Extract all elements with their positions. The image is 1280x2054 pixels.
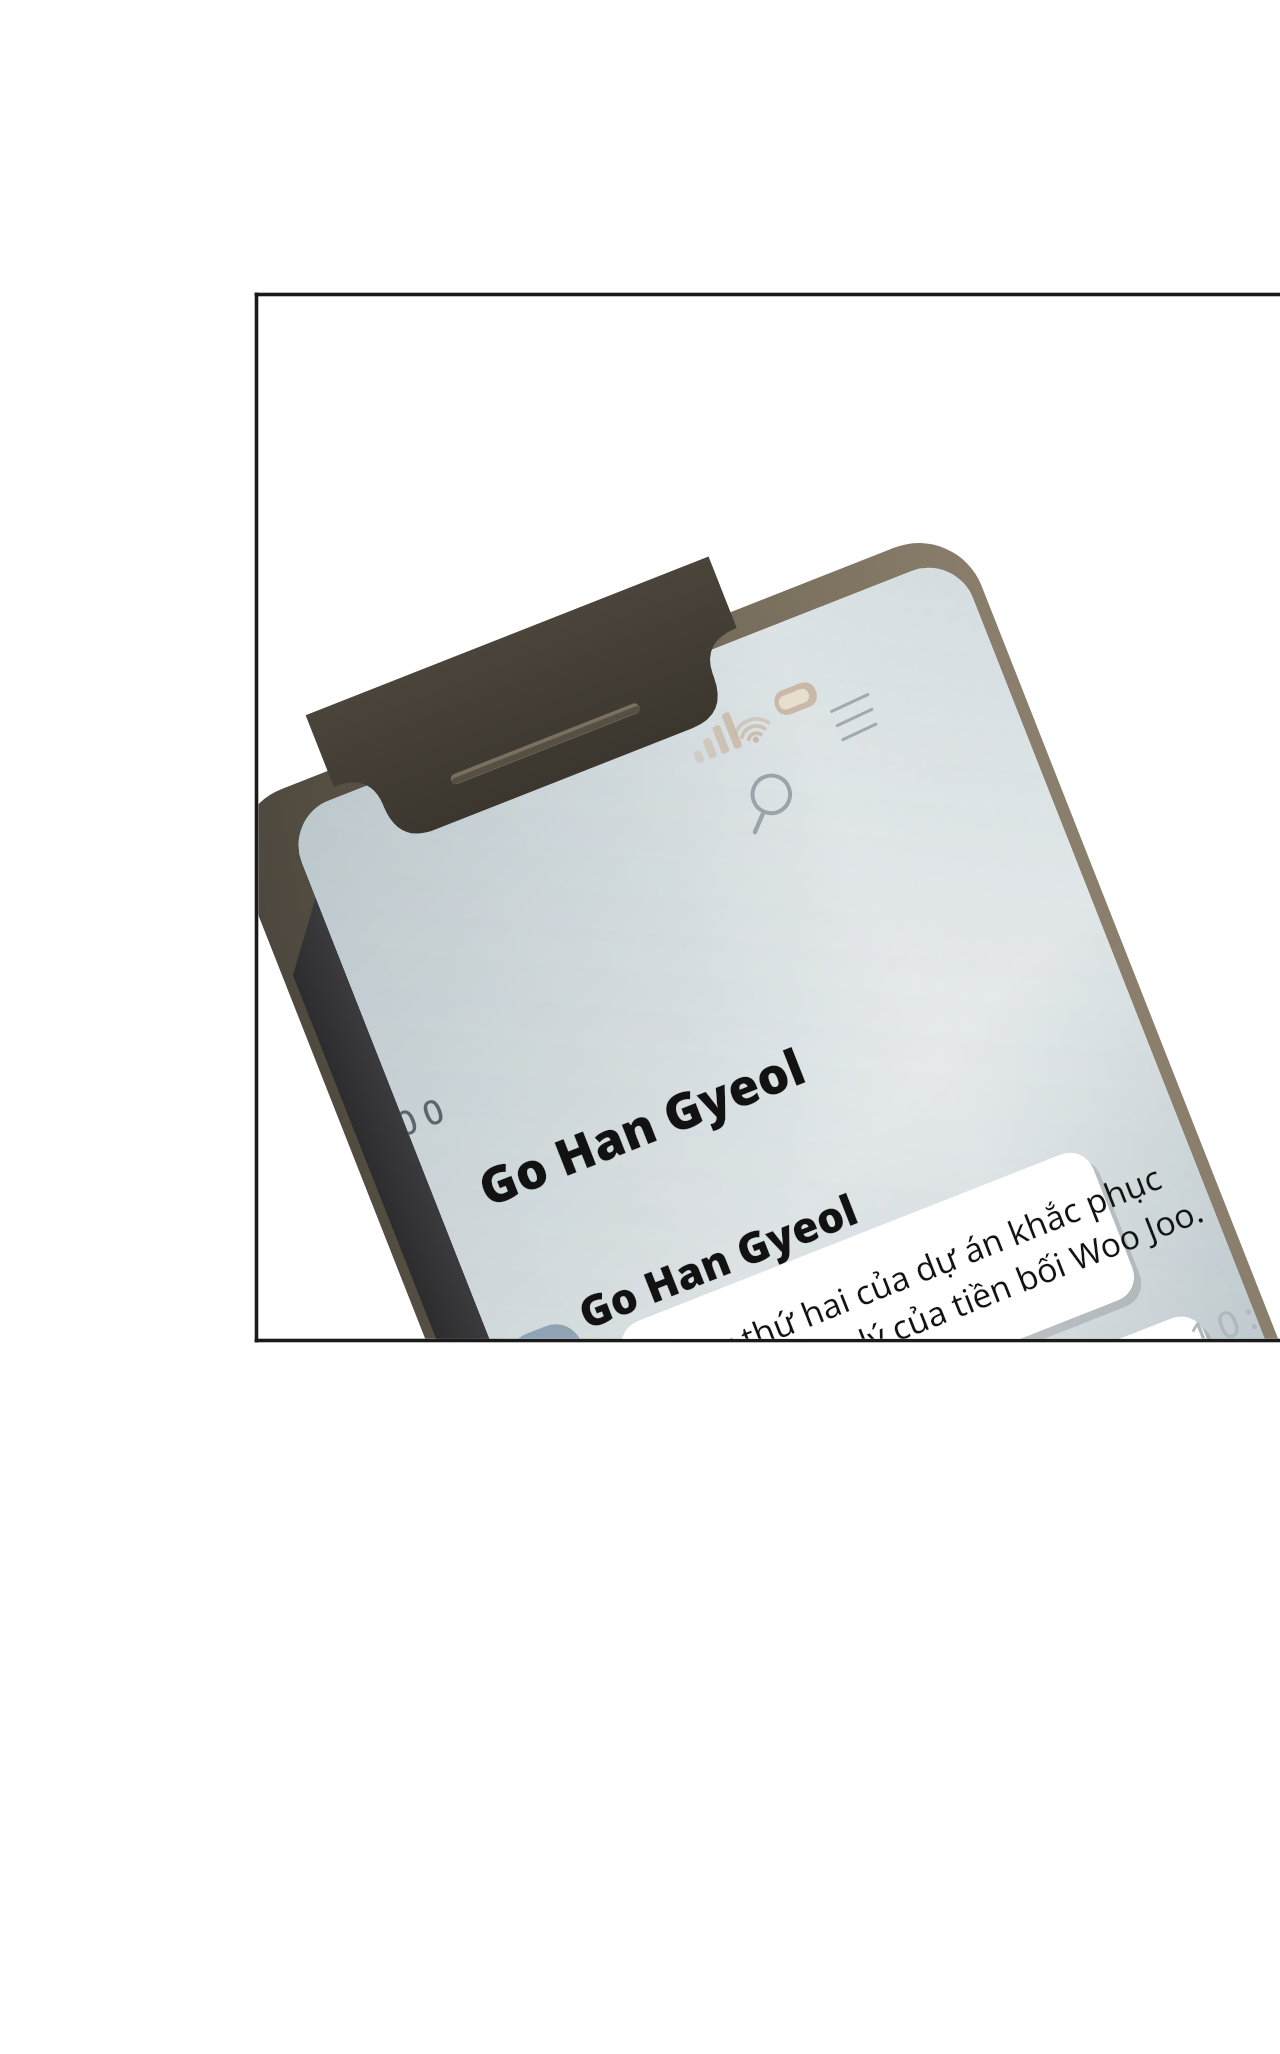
button[interactable]: Chat conversation with Go Han Gyeol <box>0 0 1280 2054</box>
